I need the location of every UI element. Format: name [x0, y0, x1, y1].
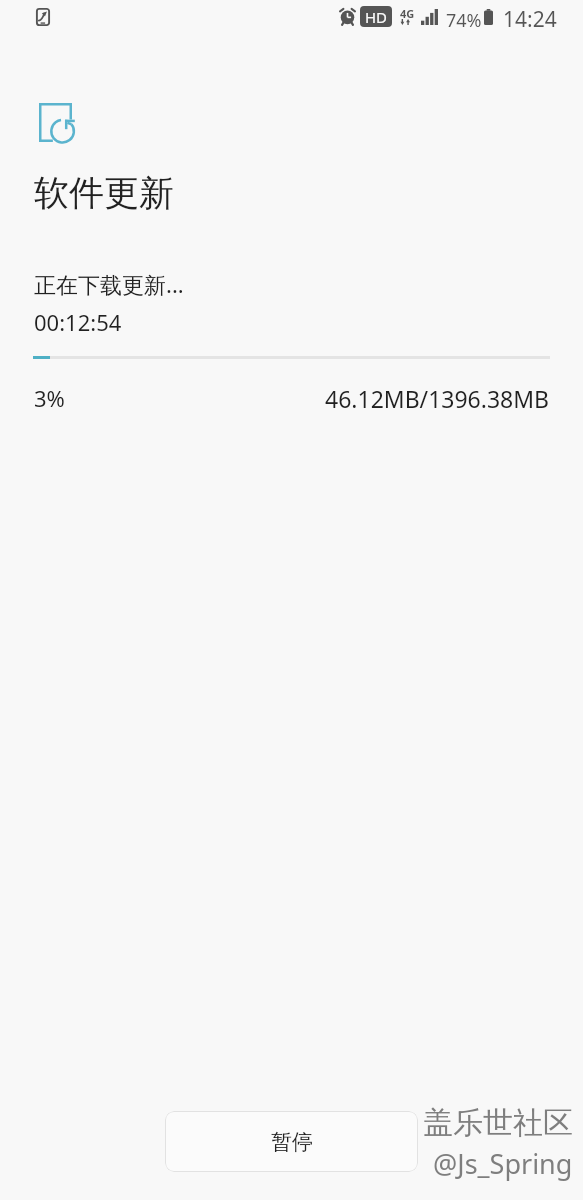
other: Battery 74 percent: [484, 9, 493, 25]
staticText: 3%: [34, 383, 65, 413]
staticText: 正在下载更新...: [34, 269, 184, 299]
staticText: 00:12:54: [34, 307, 122, 337]
other: Alarm set: [339, 8, 356, 25]
staticText: 4G: [400, 6, 415, 21]
staticText: 74%: [446, 8, 482, 33]
staticText: 盖乐世社区: [423, 1104, 573, 1142]
staticText: @Js_Spring: [433, 1145, 573, 1182]
other: 4G data: [399, 9, 415, 27]
staticText: 软件更新: [34, 171, 174, 215]
staticText: 暂停: [271, 1129, 313, 1155]
other: Data usage: [36, 8, 50, 26]
staticText: 14:24: [503, 5, 557, 34]
other: Signal strength: [421, 9, 438, 25]
other: Software update: [39, 103, 77, 143]
staticText: HD: [365, 7, 388, 27]
staticText: 46.12MB/1396.38MB: [325, 383, 550, 414]
button[interactable]: 暂停: [165, 1111, 418, 1172]
